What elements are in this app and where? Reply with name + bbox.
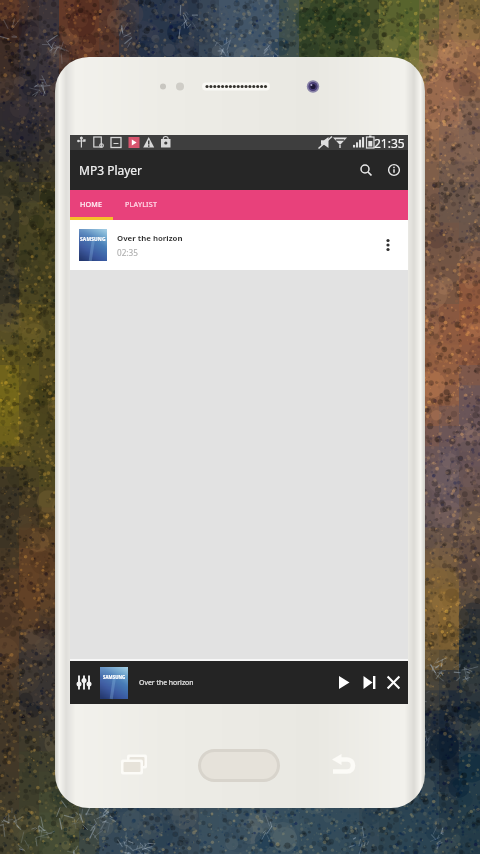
button[interactable]: Play [331,661,357,704]
staticText: SAMSUNG [103,674,126,680]
button[interactable]: Info [380,150,408,190]
button[interactable]: Equalizer [70,661,98,704]
staticText: Over the horizon [139,678,194,687]
staticText: SAMSUNG [80,236,106,243]
staticText: PLAYLIST [125,199,158,209]
button[interactable]: Search [352,150,380,190]
staticText: 02:35 [117,247,138,258]
staticText: 21:35 [374,135,405,150]
staticText: MP3 Player [79,162,143,178]
button[interactable]: HOME [70,190,113,217]
button[interactable]: Next [357,661,381,704]
staticText: HOME [80,199,103,209]
staticText: Over the horizon [117,233,183,244]
button[interactable]: PLAYLIST [113,190,169,217]
button[interactable]: SAMSUNG [70,220,408,270]
button[interactable]: Close [381,661,405,704]
button[interactable]: More options [373,230,403,260]
